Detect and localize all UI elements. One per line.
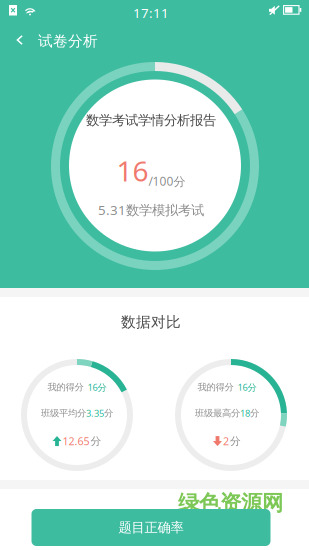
button[interactable]: 题目正确率 — [31, 509, 270, 546]
staticText: 题目正确率 — [118, 519, 183, 536]
staticText: 我的得分 — [197, 381, 233, 393]
staticText: /100分 — [148, 173, 185, 189]
staticText: 分 — [230, 434, 241, 448]
staticText: 18 — [240, 407, 250, 419]
staticText: www.downcc.com — [178, 516, 256, 529]
staticText: 分 — [250, 407, 259, 419]
staticText: 5.31数学模拟考试 — [98, 201, 204, 219]
staticText: 数学考试学情分析报告 — [86, 112, 216, 128]
staticText: 17:11 — [133, 4, 169, 22]
staticText: 数据对比 — [121, 313, 181, 331]
staticText: 班级最高分 — [195, 407, 240, 419]
staticText: 分 — [104, 407, 113, 419]
staticText: 16分 — [237, 381, 256, 393]
staticText: 试卷分析 — [38, 32, 98, 50]
staticText: 12.65 — [62, 434, 89, 448]
staticText: 我的得分 — [47, 381, 83, 393]
staticText: 3.35 — [86, 407, 104, 419]
staticText: 2 — [223, 434, 229, 448]
staticText: 班级平均分 — [41, 407, 86, 419]
button[interactable]: Back — [0, 0, 309, 550]
staticText: 16分 — [87, 381, 106, 393]
staticText: 分 — [90, 434, 101, 448]
staticText: 16 — [116, 152, 148, 189]
staticText: 绿色资源网 — [178, 490, 283, 516]
